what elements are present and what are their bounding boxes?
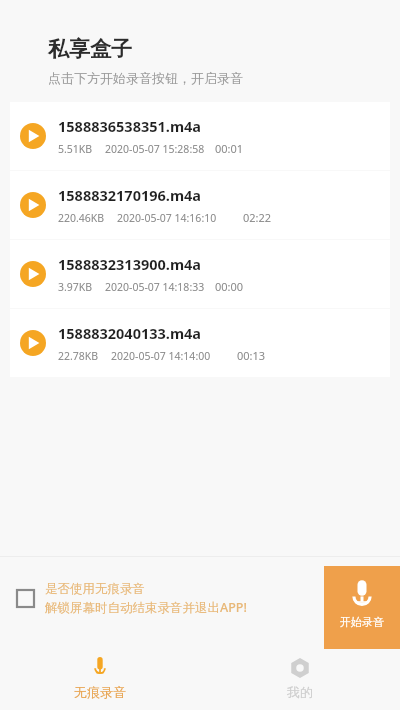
staticText: 是否使用无痕录音 [45,581,145,597]
staticText: 我的 [287,684,313,700]
staticText: 1588832170196.m4a [58,185,202,205]
staticText: 00:13 [237,348,266,363]
button[interactable]: Play [10,102,390,170]
staticText: 00:01 [215,141,244,156]
other: Play [20,330,46,356]
other: Play [20,192,46,218]
staticText: 00:00 [215,279,244,294]
button[interactable]: 无痕录音 [0,644,200,700]
other: Play [20,261,46,287]
staticText: 开始录音 [340,615,384,629]
staticText: 3.97KB [58,280,93,294]
staticText: 解锁屏幕时自动结束录音并退出APP! [45,599,247,616]
staticText: 2020-05-07 14:16:10 [117,211,217,225]
button[interactable]: 我的 [200,644,400,700]
button[interactable]: 开始录音 [324,566,400,649]
button[interactable]: Play [10,240,390,308]
staticText: 5.51KB [58,142,93,156]
button[interactable]: Play [10,171,390,239]
button[interactable]: Play [10,309,390,377]
staticText: 私享盒子 [48,36,132,62]
staticText: 1588836538351.m4a [58,116,202,136]
staticText: 2020-05-07 15:28:58 [105,142,205,156]
button[interactable]: 是否使用无痕录音 [16,581,247,616]
staticText: 220.46KB [58,211,105,225]
staticText: 无痕录音 [74,684,126,700]
staticText: 1588832313900.m4a [58,254,202,274]
other: Play [20,123,46,149]
staticText: 2020-05-07 14:18:33 [105,280,205,294]
staticText: 1588832040133.m4a [58,323,202,343]
staticText: 点击下方开始录音按钮，开启录音 [48,70,243,86]
staticText: 22.78KB [58,349,99,363]
staticText: 2020-05-07 14:14:00 [111,349,211,363]
staticText: 02:22 [243,210,272,225]
